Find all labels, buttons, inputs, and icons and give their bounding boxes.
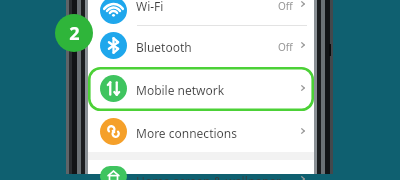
button[interactable]: Wi-Fi: [88, 0, 314, 25]
button[interactable]: More connections: [88, 112, 314, 152]
staticText: Wi-Fi: [136, 0, 164, 14]
button[interactable]: Bluetooth: [88, 26, 314, 66]
button[interactable]: Home screen & wallpaper: [88, 160, 314, 180]
staticText: Mobile network: [136, 82, 225, 98]
staticText: 2: [69, 21, 80, 46]
staticText: Bluetooth: [136, 39, 192, 55]
staticText: Home screen & wallpaper: [136, 173, 282, 180]
staticText: Off: [278, 0, 293, 13]
button[interactable]: Mobile network: [88, 67, 314, 111]
staticText: Off: [278, 40, 293, 54]
button[interactable]: Step 2: [55, 14, 93, 52]
staticText: More connections: [136, 125, 237, 141]
